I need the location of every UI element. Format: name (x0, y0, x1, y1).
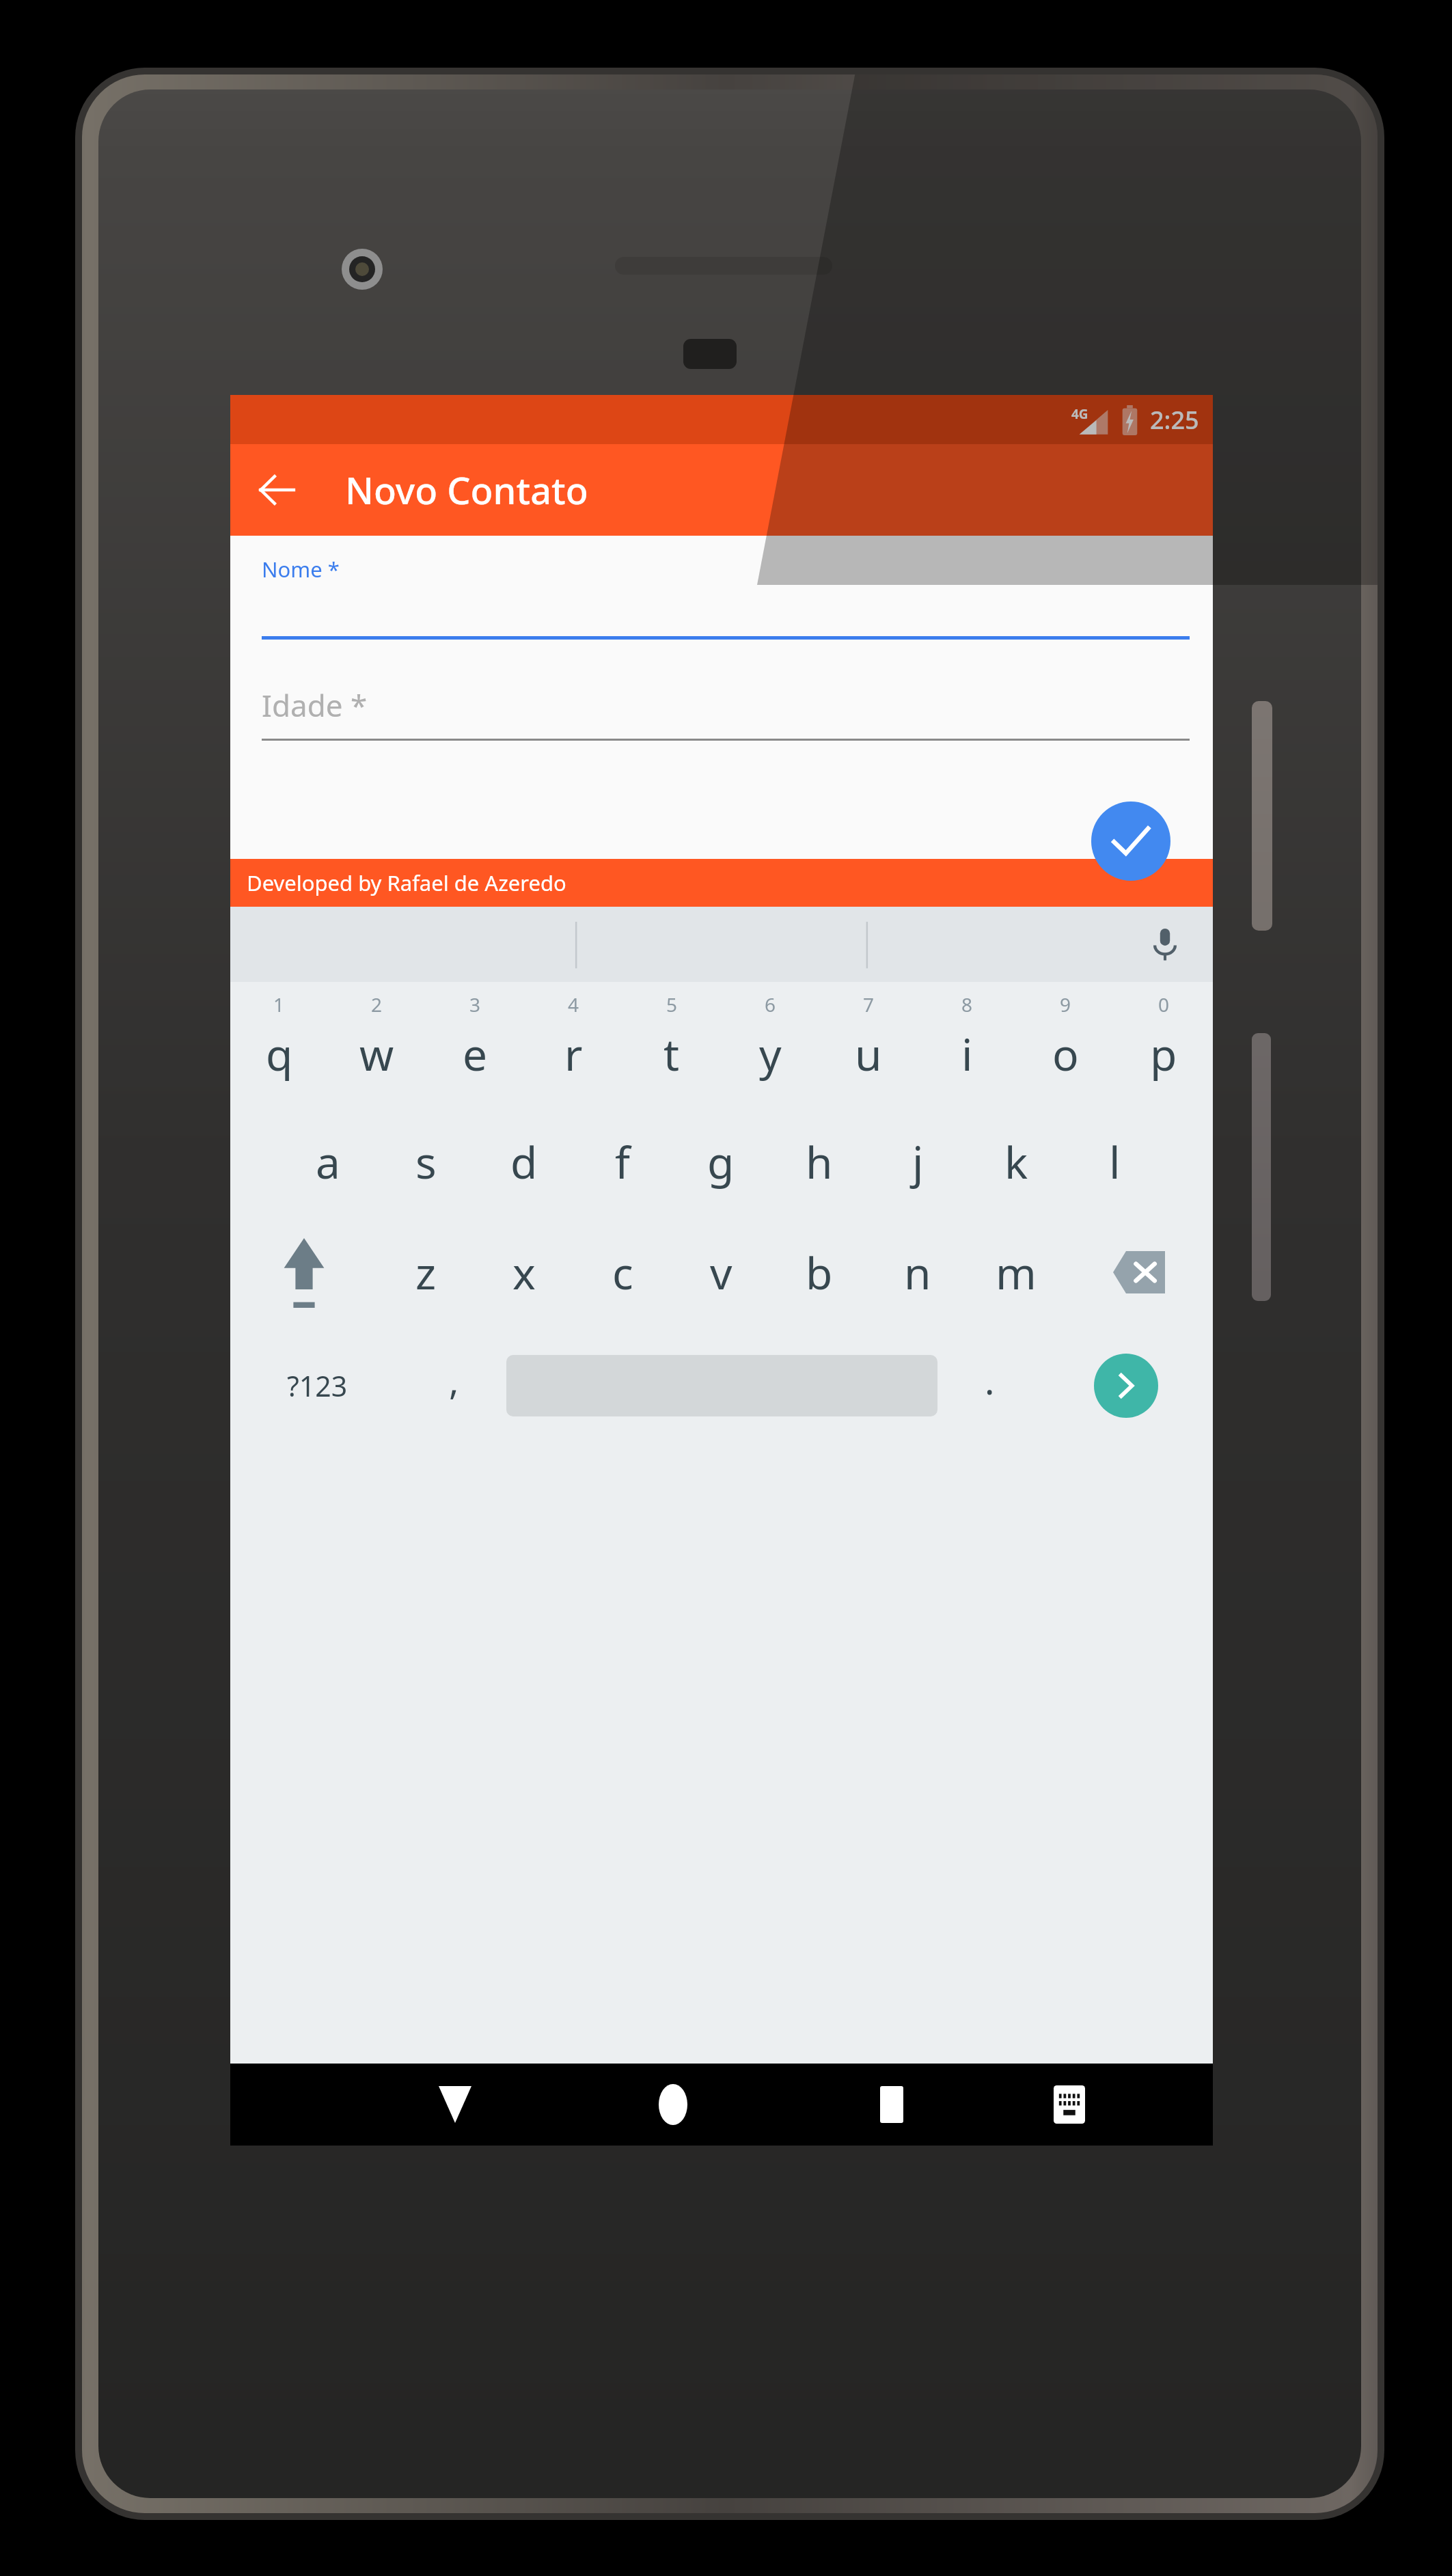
button[interactable]: Início (605, 2064, 741, 2146)
button[interactable]: Entrada de voz (1142, 921, 1188, 968)
button[interactable]: 0 (1114, 982, 1213, 1106)
staticText: 1 (273, 991, 285, 1017)
staticText: u (855, 1024, 882, 1084)
staticText: ?123 (287, 1367, 348, 1405)
button[interactable]: h (770, 1106, 868, 1217)
button[interactable]: 4 (524, 982, 622, 1106)
button[interactable]: g (672, 1106, 770, 1217)
staticText: 4 (568, 991, 579, 1017)
button[interactable]: ?123 (230, 1328, 405, 1444)
staticText: w (359, 1024, 394, 1084)
staticText: f (615, 1132, 631, 1192)
staticText: r (564, 1024, 583, 1084)
staticText: 2 (371, 991, 383, 1017)
button[interactable]: 9 (1016, 982, 1114, 1106)
staticText: k (1004, 1132, 1028, 1192)
button[interactable]: x (475, 1217, 573, 1328)
button[interactable]: Idade * (230, 640, 1213, 741)
button[interactable]: 8 (918, 982, 1016, 1106)
staticText: t (663, 1024, 680, 1084)
staticText: o (1052, 1024, 1079, 1084)
button[interactable]: Shift (230, 1217, 377, 1328)
staticText: v (710, 1243, 732, 1302)
button[interactable]: , (405, 1328, 504, 1444)
staticText: Developed by Rafael de Azeredo (247, 868, 566, 897)
button[interactable]: Enter (1094, 1354, 1158, 1418)
button[interactable]: j (868, 1106, 967, 1217)
staticText: n (904, 1243, 931, 1302)
staticText: 3 (469, 991, 481, 1017)
staticText: 0 (1158, 991, 1170, 1017)
button[interactable]: . (940, 1328, 1039, 1444)
staticText: a (316, 1132, 340, 1192)
staticText: Nome * (262, 555, 340, 584)
button[interactable]: c (573, 1217, 672, 1328)
button[interactable]: d (475, 1106, 573, 1217)
staticText: 2:25 (1150, 403, 1199, 437)
button[interactable]: 2 (328, 982, 426, 1106)
staticText: Novo Contato (345, 465, 588, 515)
button[interactable]: 5 (622, 982, 721, 1106)
staticText: p (1150, 1024, 1177, 1084)
staticText: 7 (863, 991, 875, 1017)
staticText: . (985, 1355, 995, 1406)
staticText: j (912, 1132, 924, 1192)
staticText: c (612, 1243, 633, 1302)
staticText: s (415, 1132, 437, 1192)
staticText: d (510, 1132, 538, 1192)
staticText: 8 (961, 991, 973, 1017)
staticText: m (996, 1243, 1037, 1302)
button[interactable]: Salvar contato (1091, 801, 1170, 881)
button[interactable]: k (967, 1106, 1065, 1217)
staticText: i (961, 1024, 973, 1084)
staticText: z (415, 1243, 437, 1302)
staticText: e (463, 1024, 488, 1084)
staticText: y (759, 1024, 782, 1084)
staticText: h (806, 1132, 833, 1192)
staticText: l (1109, 1132, 1121, 1192)
button[interactable]: m (967, 1217, 1065, 1328)
staticText: 6 (765, 991, 776, 1017)
button[interactable]: Voltar (387, 2064, 523, 2146)
staticText: g (707, 1132, 735, 1192)
button[interactable]: f (573, 1106, 672, 1217)
button[interactable]: n (868, 1217, 967, 1328)
button[interactable]: 1 (230, 982, 328, 1106)
staticText: q (266, 1024, 293, 1084)
staticText: 4G (1071, 405, 1088, 423)
button[interactable]: Trocar teclado (1001, 2064, 1138, 2146)
staticText: Idade * (262, 685, 368, 726)
button[interactable]: v (672, 1217, 770, 1328)
staticText: , (449, 1355, 459, 1406)
button[interactable]: 3 (426, 982, 524, 1106)
button[interactable]: l (1065, 1106, 1164, 1217)
button[interactable]: 6 (721, 982, 819, 1106)
button[interactable]: Voltar (249, 463, 304, 517)
button[interactable]: Apagar (1065, 1217, 1213, 1328)
staticText: 5 (666, 991, 678, 1017)
staticText: b (806, 1243, 833, 1302)
button[interactable]: a (279, 1106, 376, 1217)
staticText: 9 (1060, 991, 1071, 1017)
button[interactable]: 7 (819, 982, 918, 1106)
button[interactable]: s (376, 1106, 475, 1217)
button[interactable]: Nome * (230, 538, 1213, 640)
button[interactable]: Recentes (823, 2064, 960, 2146)
staticText: x (512, 1243, 536, 1302)
button[interactable]: b (770, 1217, 868, 1328)
button[interactable]: z (377, 1217, 475, 1328)
